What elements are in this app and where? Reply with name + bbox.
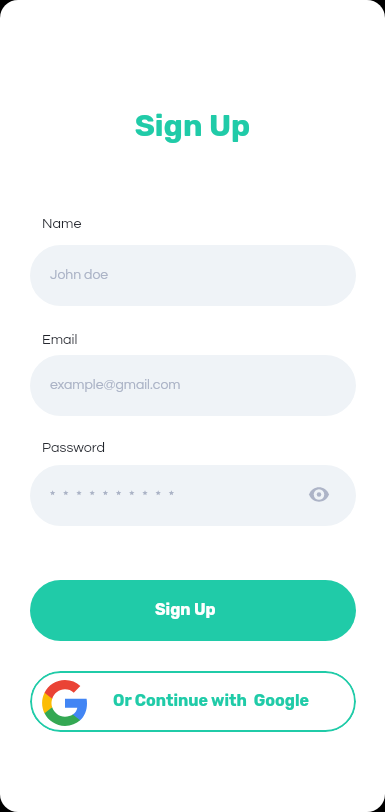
button[interactable]: Show password xyxy=(303,479,334,510)
button[interactable]: Or Continue with Google xyxy=(30,671,356,732)
button[interactable]: John doe xyxy=(30,245,356,306)
button[interactable]: Sign Up xyxy=(30,580,356,641)
staticText: Sign Up xyxy=(155,600,216,619)
staticText: John doe xyxy=(50,268,109,282)
staticText: Or Continue with Google xyxy=(113,691,309,710)
staticText: Sign Up xyxy=(0,107,385,143)
staticText: example@gmail.com xyxy=(50,378,181,392)
staticText: Email xyxy=(42,332,78,347)
staticText: Name xyxy=(42,216,82,231)
button[interactable]: Show password xyxy=(30,465,356,526)
button[interactable]: example@gmail.com xyxy=(30,355,356,416)
staticText: Password xyxy=(42,440,106,455)
